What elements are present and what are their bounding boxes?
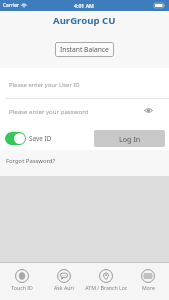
button[interactable]: Forgot Password? xyxy=(0,155,62,171)
button[interactable]: Instant Balance xyxy=(55,42,114,57)
staticText: Ask Auri xyxy=(54,284,74,291)
staticText: Please enter your User ID xyxy=(9,81,80,89)
staticText: Forgot Password? xyxy=(6,157,56,165)
staticText: Save ID xyxy=(29,134,52,143)
other: Battery xyxy=(154,3,165,8)
staticText: AurGroup CU xyxy=(53,14,116,27)
staticText: More xyxy=(142,284,155,291)
button[interactable]: Log In xyxy=(94,130,165,147)
staticText: 4:01 AM xyxy=(74,2,94,9)
button[interactable]: More xyxy=(127,269,169,295)
button[interactable]: Please enter your User ID xyxy=(0,68,169,98)
button[interactable]: Ask Auri xyxy=(43,269,85,295)
staticText: Please enter your password xyxy=(9,107,89,115)
button[interactable]: Touch ID xyxy=(0,269,43,295)
staticText: Log In xyxy=(119,134,141,144)
button[interactable]: ATM / Branch Loc... xyxy=(85,269,127,295)
button[interactable]: Please enter your password xyxy=(0,99,169,122)
button[interactable]: Save ID xyxy=(5,132,52,145)
staticText: Touch ID xyxy=(11,284,33,291)
other: Show password xyxy=(144,106,153,115)
staticText: ATM / Branch Loc... xyxy=(85,284,127,291)
staticText: Instant Balance xyxy=(60,45,109,54)
staticText: Carrier xyxy=(3,2,19,9)
